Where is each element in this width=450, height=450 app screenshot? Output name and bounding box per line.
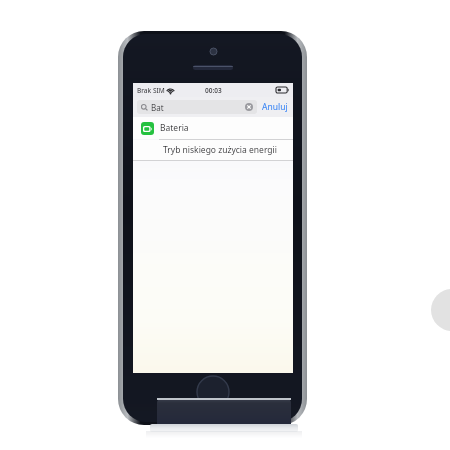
staticText: Bateria: [160, 122, 189, 134]
button[interactable]: Anuluj: [261, 99, 289, 115]
staticText: Anuluj: [262, 101, 288, 113]
other: Battery settings: [141, 122, 154, 135]
staticText: 00:03: [205, 86, 222, 95]
staticText: Tryb niskiego zużycia energii: [163, 144, 277, 156]
staticText: Bat: [151, 102, 164, 113]
button[interactable]: Clear search: [245, 103, 253, 111]
staticText: Brak SIM: [137, 86, 165, 95]
button[interactable]: Battery settings: [133, 117, 293, 139]
button[interactable]: Tryb niskiego zużycia energii: [133, 140, 293, 160]
button[interactable]: Bat: [137, 100, 257, 114]
